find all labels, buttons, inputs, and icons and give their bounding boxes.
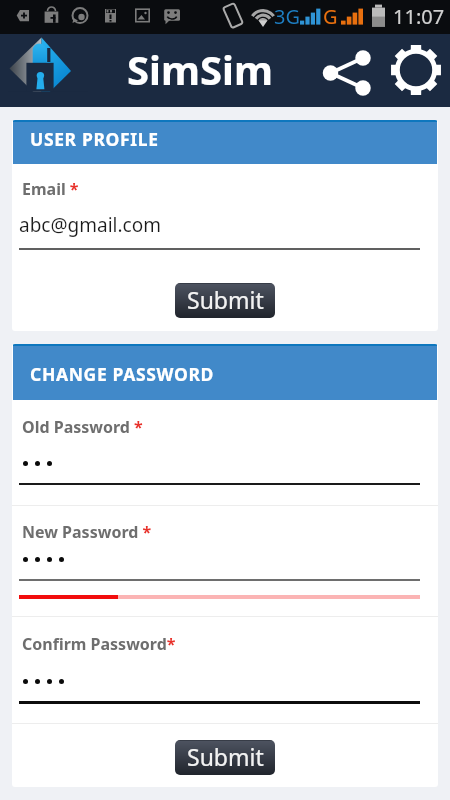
staticText: Submit [187,284,264,315]
staticText: USER PROFILE [30,127,159,151]
button[interactable]: Submit [175,283,275,318]
staticText: Email * [22,178,79,200]
button[interactable]: Submit [175,740,275,775]
staticText: 3G [274,3,300,30]
staticText: abc@gmail.com [19,212,161,238]
staticText: Old Password * [22,416,143,438]
button[interactable]: App logo [8,38,88,102]
staticText: CHANGE PASSWORD [30,362,214,386]
staticText: Submit [187,741,264,772]
staticText: SimSim [127,42,273,96]
button[interactable]: Share [319,45,375,101]
staticText: Confirm Password* [22,633,176,655]
staticText: New Password * [22,521,152,543]
staticText: G [323,3,338,30]
button[interactable]: Settings [388,42,444,98]
staticText: 11:07 [393,3,445,30]
